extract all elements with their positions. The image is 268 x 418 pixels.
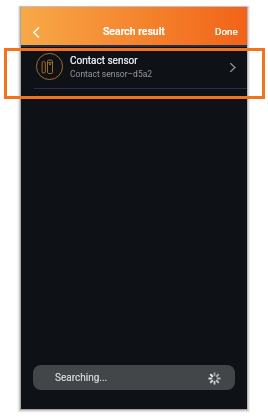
button[interactable]: Searching... [33, 365, 235, 390]
staticText: Done [215, 26, 238, 37]
button[interactable]: Back [24, 21, 48, 44]
staticText: Contact sensor [70, 55, 138, 67]
staticText: Search result [103, 25, 165, 37]
staticText: Searching... [55, 372, 108, 384]
staticText: Contact sensor–d5a2 [70, 69, 153, 79]
button[interactable]: Contact sensor [21, 47, 247, 89]
button[interactable]: Done [206, 21, 247, 42]
